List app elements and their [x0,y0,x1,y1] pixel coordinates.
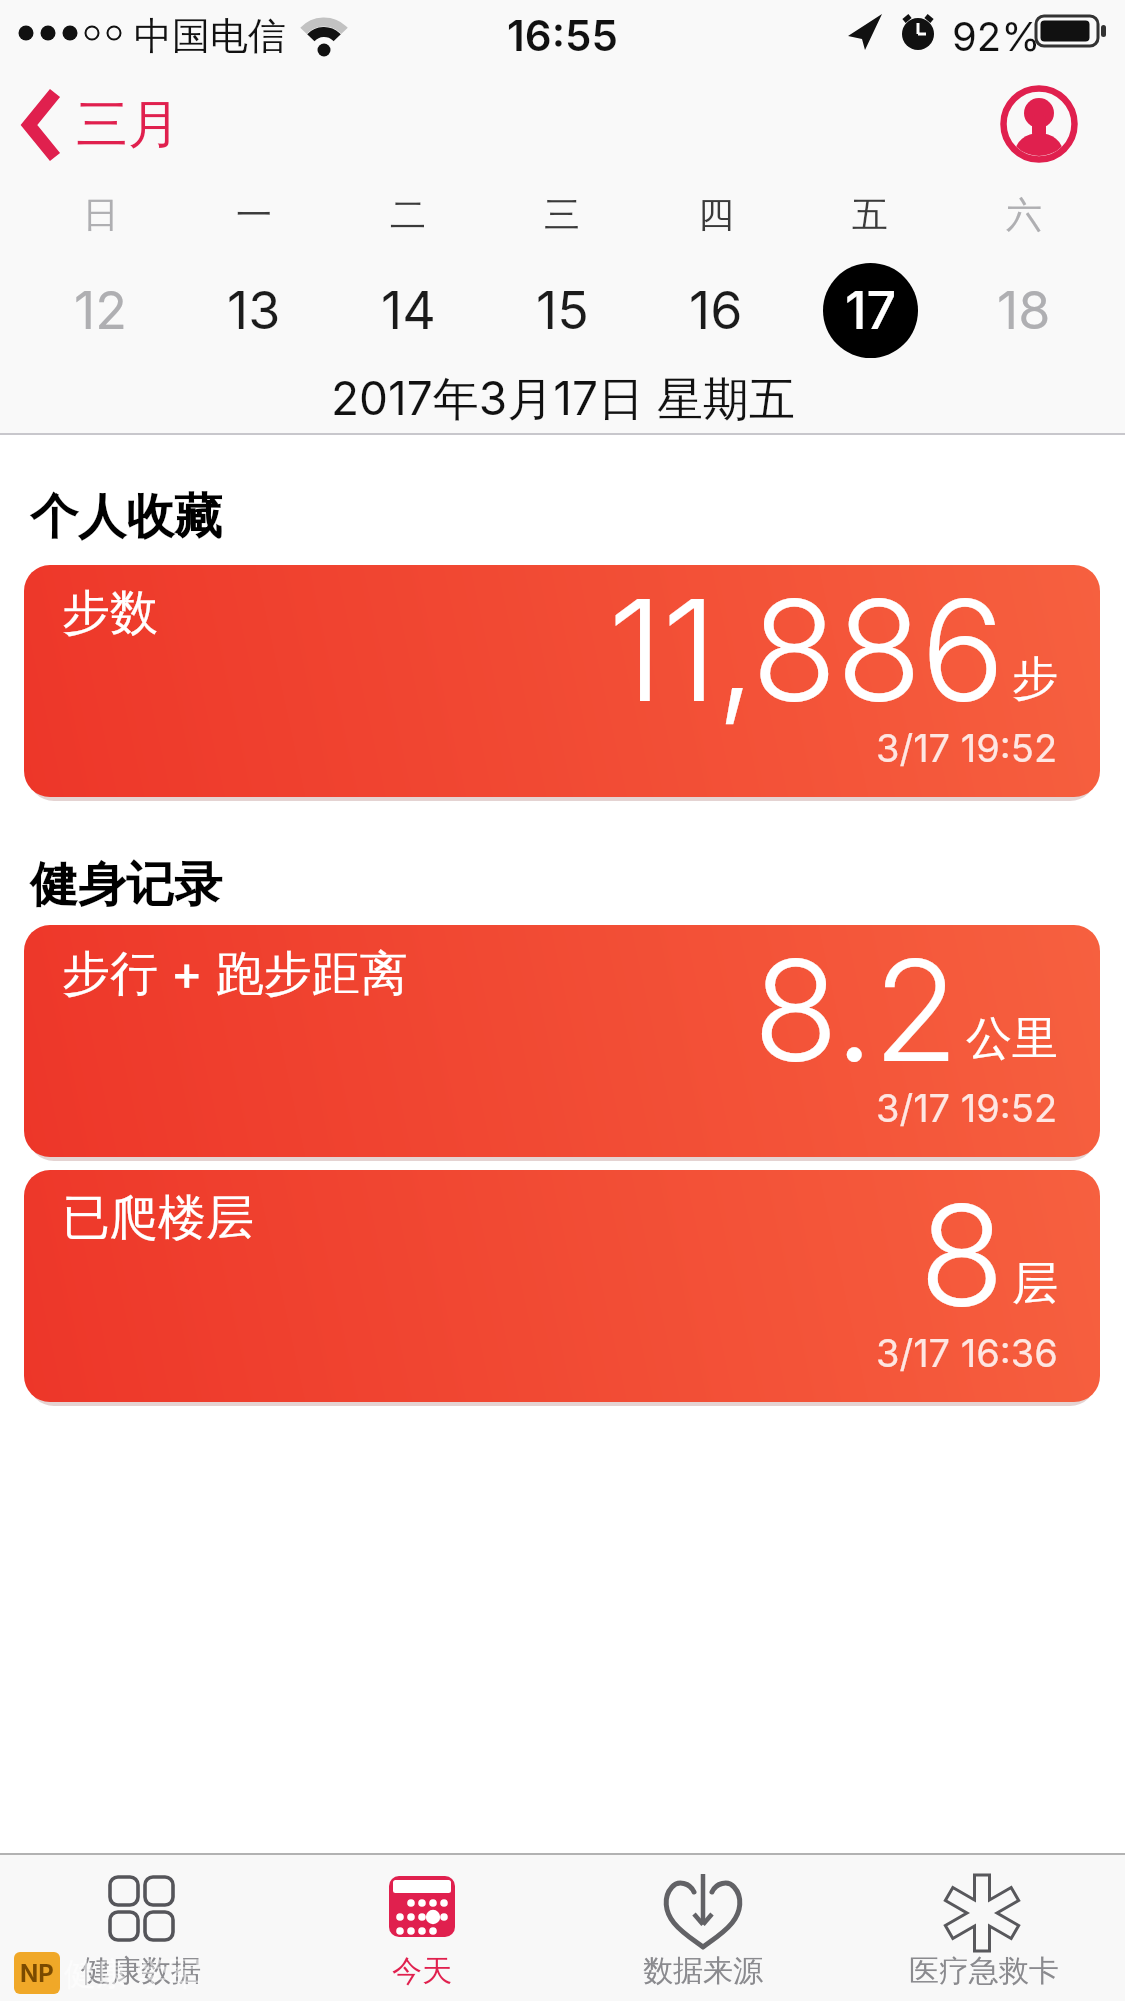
button[interactable]: 17 [823,263,918,358]
button[interactable] [1000,85,1078,163]
staticText: 公里 [966,1010,1058,1068]
staticText: 三月 [76,92,180,158]
staticText: 健身记录 [30,855,222,915]
staticText: 四 [698,192,734,237]
staticText: 五 [852,192,888,237]
staticText: 个人收藏 [30,487,222,547]
button[interactable]: 三月 [10,80,210,170]
button[interactable]: 已爬楼层 [24,1170,1100,1402]
button[interactable]: 医疗急救卡 [843,1853,1124,2001]
staticText: 8.2 [753,925,958,1094]
staticText: 医疗急救卡 [909,1952,1059,1990]
staticText: 15 [536,279,589,342]
staticText: 13 [227,279,281,342]
staticText: 中国电信 [134,12,286,60]
button[interactable]: 健康数据 [0,1853,281,2001]
staticText: 14 [381,279,436,342]
staticText: 17 [845,279,897,342]
staticText: 16 [689,279,743,342]
staticText: 步 [1012,650,1058,708]
staticText: 已爬楼层 [62,1188,254,1248]
staticText: 92% [952,12,1041,60]
staticText: 数据来源 [643,1952,763,1990]
button[interactable]: 步行 + 跑步距离 [24,925,1100,1157]
staticText: 健康数据 [81,1952,201,1990]
staticText: 六 [1006,192,1042,237]
staticText: 18 [997,279,1051,342]
staticText: 健康 学军 [64,1954,201,1995]
staticText: 3/17 19:52 [876,725,1058,771]
staticText: 步行 + 跑步距离 [62,943,408,1004]
staticText: 步数 [62,583,158,643]
button[interactable]: 今天 [281,1853,562,2001]
button[interactable]: 数据来源 [562,1853,843,2001]
button[interactable]: 步数 [24,565,1100,797]
staticText: 层 [1012,1255,1058,1313]
staticText: 3/17 16:36 [876,1330,1058,1376]
staticText: 8 [919,1170,1004,1339]
staticText: 11,886 [608,565,1004,734]
staticText: 三 [544,192,580,237]
staticText: 16:55 [507,10,618,61]
staticText: 日 [83,192,119,237]
staticText: 二 [390,192,426,237]
staticText: 3/17 19:52 [876,1085,1058,1131]
staticText: 2017年3月17日 星期五 [331,370,795,428]
staticText: NP [20,1959,54,1988]
staticText: 12 [74,279,127,342]
staticText: 今天 [392,1952,452,1990]
staticText: 一 [236,192,272,237]
